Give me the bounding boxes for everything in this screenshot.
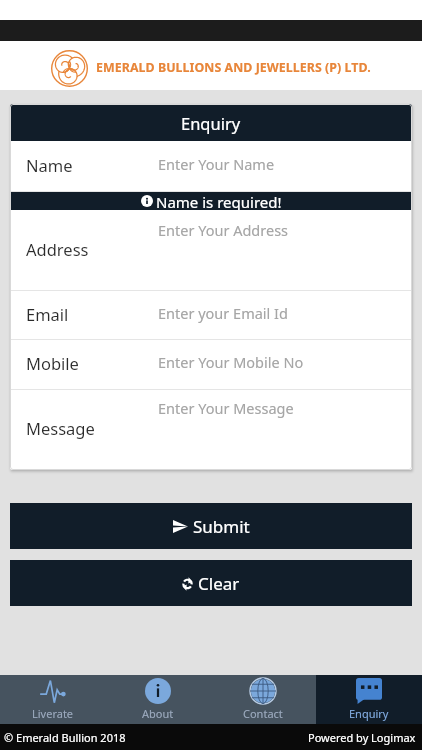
staticText: Submit <box>193 515 250 538</box>
button[interactable]: Message <box>10 390 412 470</box>
other: Liverate <box>40 678 66 704</box>
staticText: Enquiry <box>349 706 389 721</box>
staticText: Enter your Email Id <box>158 303 288 323</box>
staticText: Enter Your Address <box>158 220 289 240</box>
staticText: Liverate <box>32 706 74 721</box>
staticText: Enter Your Message <box>158 398 294 418</box>
staticText: About <box>142 706 174 721</box>
button[interactable]: Contact <box>210 675 316 724</box>
button[interactable]: Email <box>10 291 412 340</box>
staticText: Enter Your Name <box>158 154 275 174</box>
staticText: Mobile <box>26 352 79 374</box>
button[interactable]: Submit <box>10 503 412 549</box>
staticText: Email <box>26 303 69 325</box>
staticText: Contact <box>243 706 283 721</box>
staticText: Name <box>26 154 73 176</box>
button[interactable]: Liverate <box>0 675 105 724</box>
staticText: Clear <box>198 572 240 595</box>
button[interactable]: Mobile <box>10 340 412 390</box>
staticText: Powered by Logimax <box>308 730 416 745</box>
other: Enquiry <box>356 678 382 704</box>
other: Submit <box>173 520 188 533</box>
staticText: EMERALD BULLIONS AND JEWELLERS (P) LTD. <box>96 59 371 76</box>
staticText: Enter Your Mobile No <box>158 352 304 372</box>
other: About <box>145 678 171 704</box>
other: Clear <box>182 577 193 591</box>
staticText: Address <box>26 238 89 260</box>
button[interactable]: Address <box>10 210 412 291</box>
staticText: Enquiry <box>181 112 241 134</box>
button[interactable]: Name <box>10 141 412 192</box>
staticText: © Emerald Bullion 2018 <box>4 730 126 745</box>
button[interactable]: Enquiry <box>316 675 422 724</box>
staticText: Name is required! <box>156 192 282 210</box>
staticText: Message <box>26 417 95 439</box>
button[interactable]: Clear <box>10 560 412 606</box>
button[interactable]: About <box>105 675 210 724</box>
other: Contact <box>250 678 276 704</box>
